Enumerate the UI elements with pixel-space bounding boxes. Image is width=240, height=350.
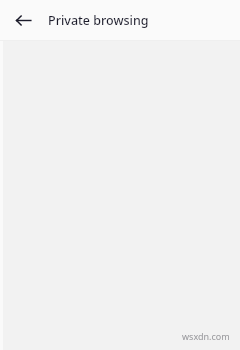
staticText: Private browsing — [48, 12, 149, 29]
staticText: wsxdn.com — [182, 330, 230, 342]
button[interactable]: Navigate up — [6, 3, 40, 37]
